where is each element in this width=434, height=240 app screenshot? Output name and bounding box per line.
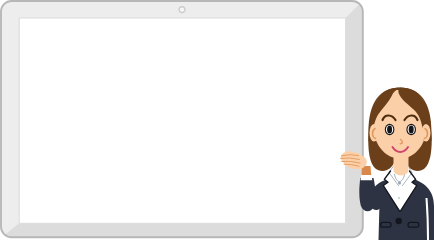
button[interactable]: Businesswoman presenting a blank tablet …: [0, 0, 434, 240]
